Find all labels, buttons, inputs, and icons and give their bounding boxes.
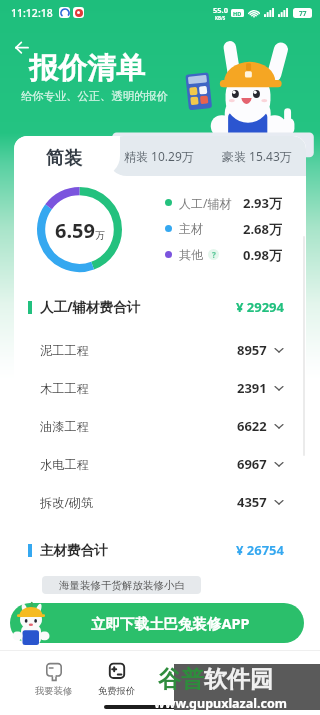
staticText: 2.93万 [243,194,282,211]
staticText: 油漆工程 [40,419,89,434]
staticText: www.gupuxlazal.com [154,695,287,712]
staticText: 11:12:18 [11,6,53,20]
staticText: 万 [95,229,105,242]
staticText: 精装 10.29万 [124,148,194,164]
staticText: 人工/辅材费合计 [40,298,141,316]
button[interactable]: 油漆工程 [40,407,284,445]
staticText: 2.68万 [243,220,282,237]
staticText: 6622 [237,417,267,435]
staticText: 人工/辅材 [179,195,232,211]
staticText: HD [233,10,242,17]
staticText: 77 [299,9,307,18]
staticText: 报价清单 [29,50,145,87]
staticText: 水电工程 [40,457,89,472]
button[interactable]: Back [14,40,30,56]
staticText: ¥ 29294 [236,298,284,316]
button[interactable]: 拆改/砌筑 [40,483,284,521]
button[interactable]: 免费报价 [87,662,147,702]
button[interactable]: 泥工工程 [40,331,284,369]
button[interactable]: 木工工程 [40,369,284,407]
staticText: 55.0 [213,5,228,15]
staticText: 谷普 [158,665,204,694]
staticText: ? [212,249,216,260]
staticText: KB/S [215,15,226,21]
staticText: 泥工工程 [40,343,89,358]
staticText: 4357 [237,493,267,511]
staticText: 其他 [179,247,203,262]
staticText: 主材 [179,221,203,236]
staticText: 主材费合计 [40,542,108,559]
button[interactable]: Help [208,249,219,260]
staticText: 给你专业、公正、透明的报价 [21,89,168,103]
staticText: 免费报价 [98,685,136,697]
staticText: 6967 [237,455,267,473]
staticText: 立即下载土巴兔装修APP [91,613,250,633]
button[interactable]: 精装 10.29万 [120,137,213,176]
staticText: ¥ 26754 [236,541,284,559]
button[interactable]: 简装 [14,136,120,176]
button[interactable]: 我要装修 [24,662,84,702]
staticText: 8957 [237,341,267,359]
button[interactable]: 水电工程 [40,445,284,483]
staticText: 我要装修 [35,685,73,697]
staticText: 软件园 [204,665,273,694]
button[interactable]: 立即下载土巴兔装修APP [10,603,304,643]
staticText: 豪装 15.43万 [222,148,292,164]
staticText: 拆改/砌筑 [40,494,94,511]
staticText: 0.98万 [243,246,282,263]
staticText: 2391 [237,379,267,397]
staticText: 简装 [46,147,82,170]
staticText: 6.59 [55,217,95,244]
staticText: 海量装修干货解放装修小白 [59,579,185,592]
button[interactable]: 豪装 15.43万 [213,137,306,176]
staticText: 木工工程 [40,381,89,396]
